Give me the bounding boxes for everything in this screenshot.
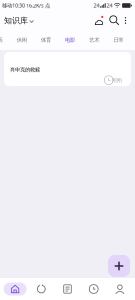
staticText: 休闲: [17, 37, 27, 43]
button[interactable]: Search: [108, 14, 121, 26]
staticText: 知识库: [4, 16, 28, 25]
staticText: 艺术: [89, 37, 99, 43]
button[interactable]: Profile: [107, 278, 133, 300]
staticText: 刚刚: [112, 77, 122, 83]
staticText: 肖申克的救赎: [10, 66, 40, 73]
button[interactable]: 电影: [58, 30, 82, 50]
staticText: 移动10:30: [2, 2, 25, 9]
button[interactable]: Create: [108, 255, 130, 277]
button[interactable]: 体育: [34, 30, 58, 50]
button[interactable]: Home: [2, 278, 28, 300]
button[interactable]: 肖申克的救赎: [4, 52, 131, 86]
button[interactable]: 艺术: [82, 30, 106, 50]
staticText: 生活: [0, 37, 2, 43]
staticText: 16.2K/s 点: [25, 2, 50, 9]
button[interactable]: Cloud sync: [93, 14, 108, 26]
button[interactable]: 知识库: [4, 14, 34, 27]
staticText: 24: [106, 2, 112, 9]
staticText: 体育: [41, 37, 51, 43]
button[interactable]: 日常: [106, 30, 131, 50]
staticText: 日常: [113, 37, 123, 43]
button[interactable]: History: [81, 278, 107, 300]
button[interactable]: Library: [54, 278, 81, 300]
button[interactable]: 休闲: [10, 30, 34, 50]
button[interactable]: Sync: [28, 278, 54, 300]
staticText: 24: [93, 2, 99, 9]
staticText: 电影: [65, 37, 75, 43]
button[interactable]: 生活: [0, 30, 10, 50]
button[interactable]: More options: [121, 14, 130, 26]
